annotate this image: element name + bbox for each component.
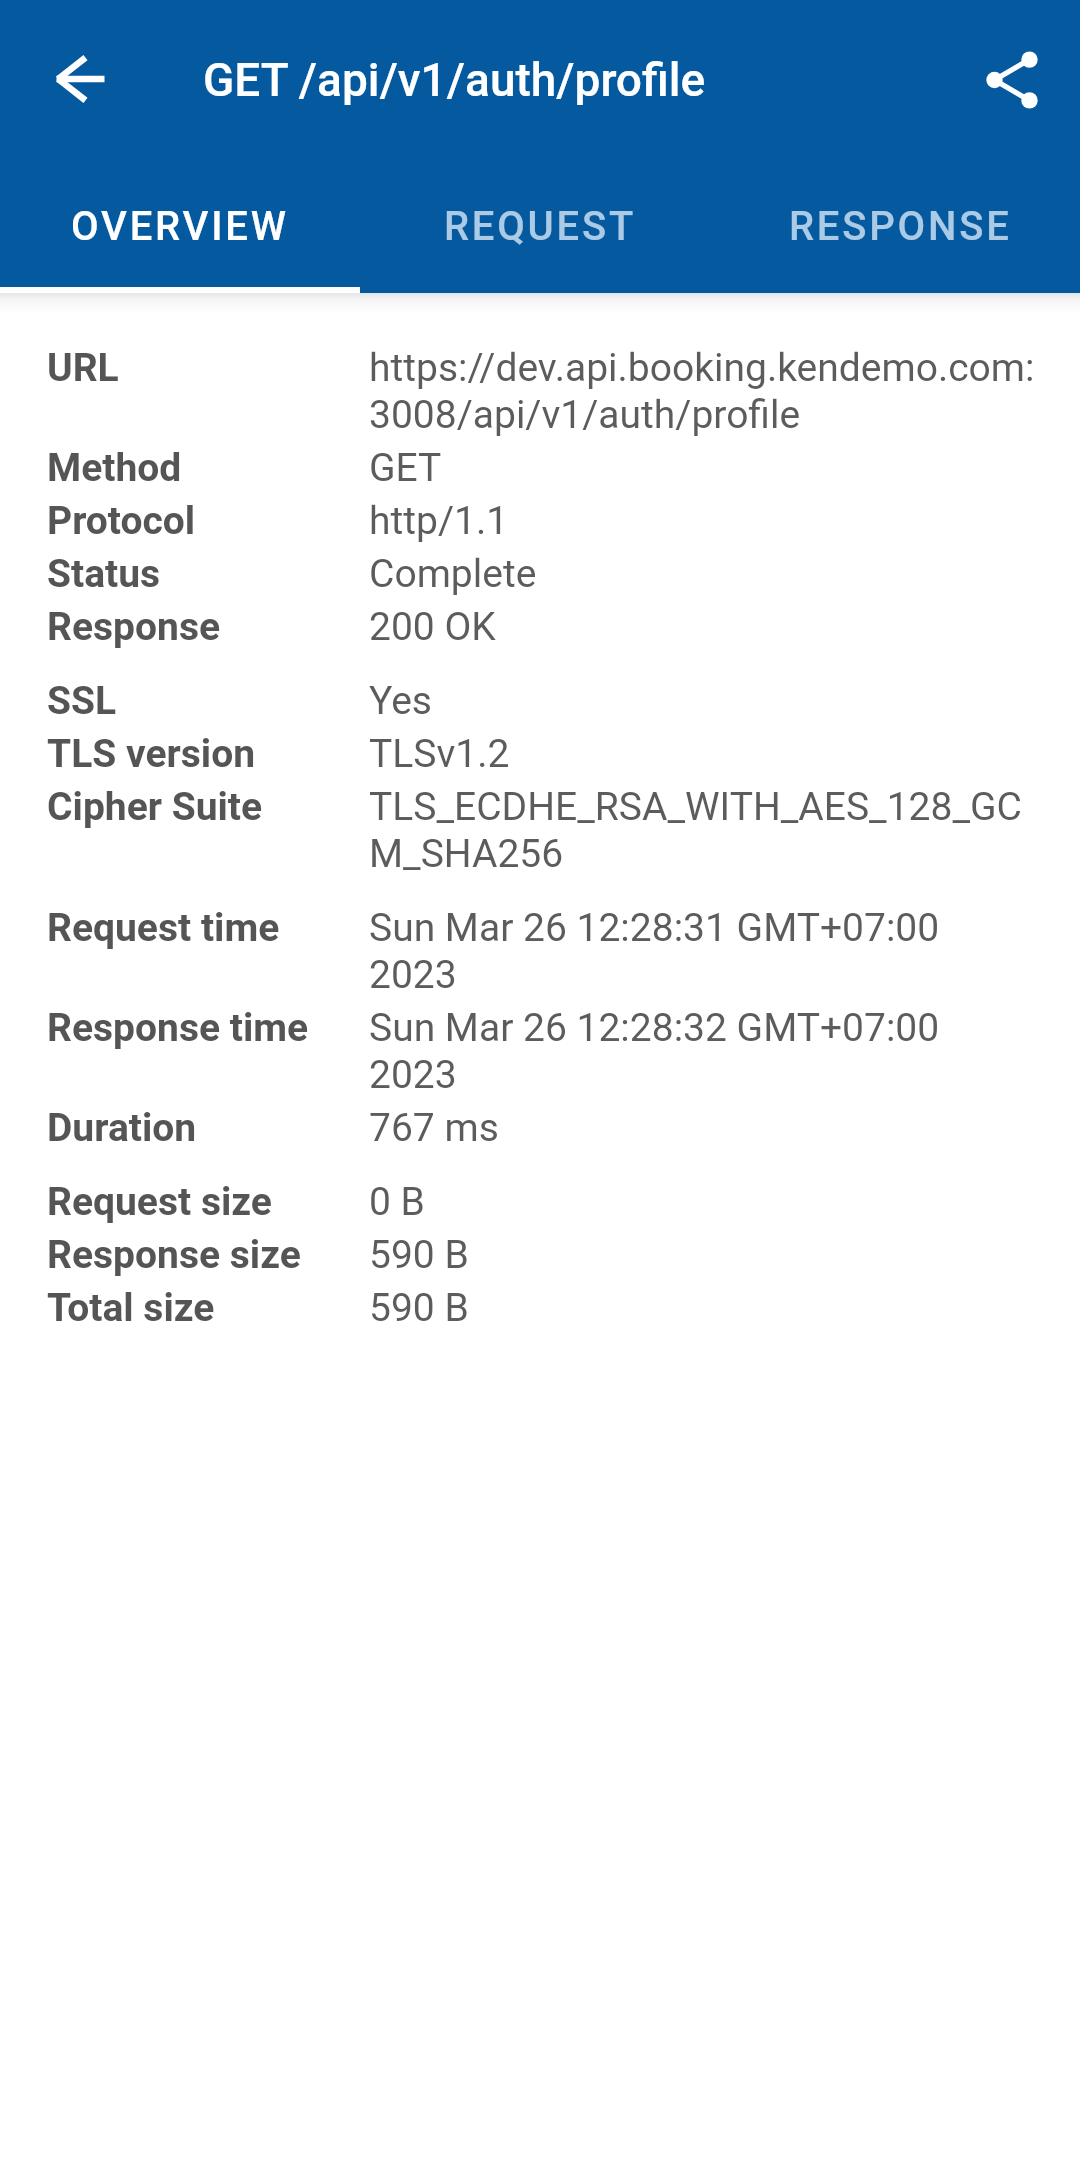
staticText: Request time [47, 905, 369, 951]
staticText: 200 OK [369, 604, 496, 650]
staticText: GET [369, 445, 442, 491]
button[interactable]: REQUEST [360, 160, 720, 293]
staticText: 2023 [369, 1052, 457, 1098]
staticText: M_SHA256 [369, 831, 564, 877]
staticText: REQUEST [444, 203, 636, 250]
staticText: 2023 [369, 952, 457, 998]
button[interactable]: Navigate up [24, 24, 136, 136]
staticText: Method [47, 445, 369, 491]
staticText: Protocol [47, 498, 369, 544]
staticText: 590 B [369, 1285, 469, 1331]
staticText: 0 B [369, 1179, 425, 1225]
staticText: 590 B [369, 1232, 469, 1278]
staticText: 3008/api/v1/auth/profile [369, 392, 801, 438]
staticText: URL [47, 345, 369, 391]
button[interactable]: Share [956, 24, 1068, 136]
staticText: Complete [369, 551, 537, 597]
staticText: Response [47, 604, 369, 650]
staticText: RESPONSE [789, 203, 1012, 250]
staticText: OVERVIEW [71, 203, 289, 250]
button[interactable]: OVERVIEW [0, 160, 360, 293]
staticText: https://dev.api.booking.kendemo.com: [369, 345, 1035, 391]
staticText: 767 ms [369, 1105, 499, 1151]
staticText: Response size [47, 1232, 369, 1278]
button[interactable]: RESPONSE [720, 160, 1080, 293]
staticText: Total size [47, 1285, 369, 1331]
staticText: Request size [47, 1179, 369, 1225]
staticText: Cipher Suite [47, 784, 369, 830]
staticText: TLSv1.2 [369, 731, 510, 777]
staticText: TLS_ECDHE_RSA_WITH_AES_128_GC [369, 784, 1022, 830]
staticText: Status [47, 551, 369, 597]
staticText: Yes [369, 678, 432, 724]
staticText: Sun Mar 26 12:28:31 GMT+07:00 [369, 905, 940, 951]
staticText: GET /api/v1/auth/profile [203, 53, 706, 107]
staticText: Response time [47, 1005, 369, 1051]
staticText: Sun Mar 26 12:28:32 GMT+07:00 [369, 1005, 940, 1051]
staticText: http/1.1 [369, 498, 509, 544]
staticText: Duration [47, 1105, 369, 1151]
staticText: TLS version [47, 731, 369, 777]
staticText: SSL [47, 678, 369, 724]
